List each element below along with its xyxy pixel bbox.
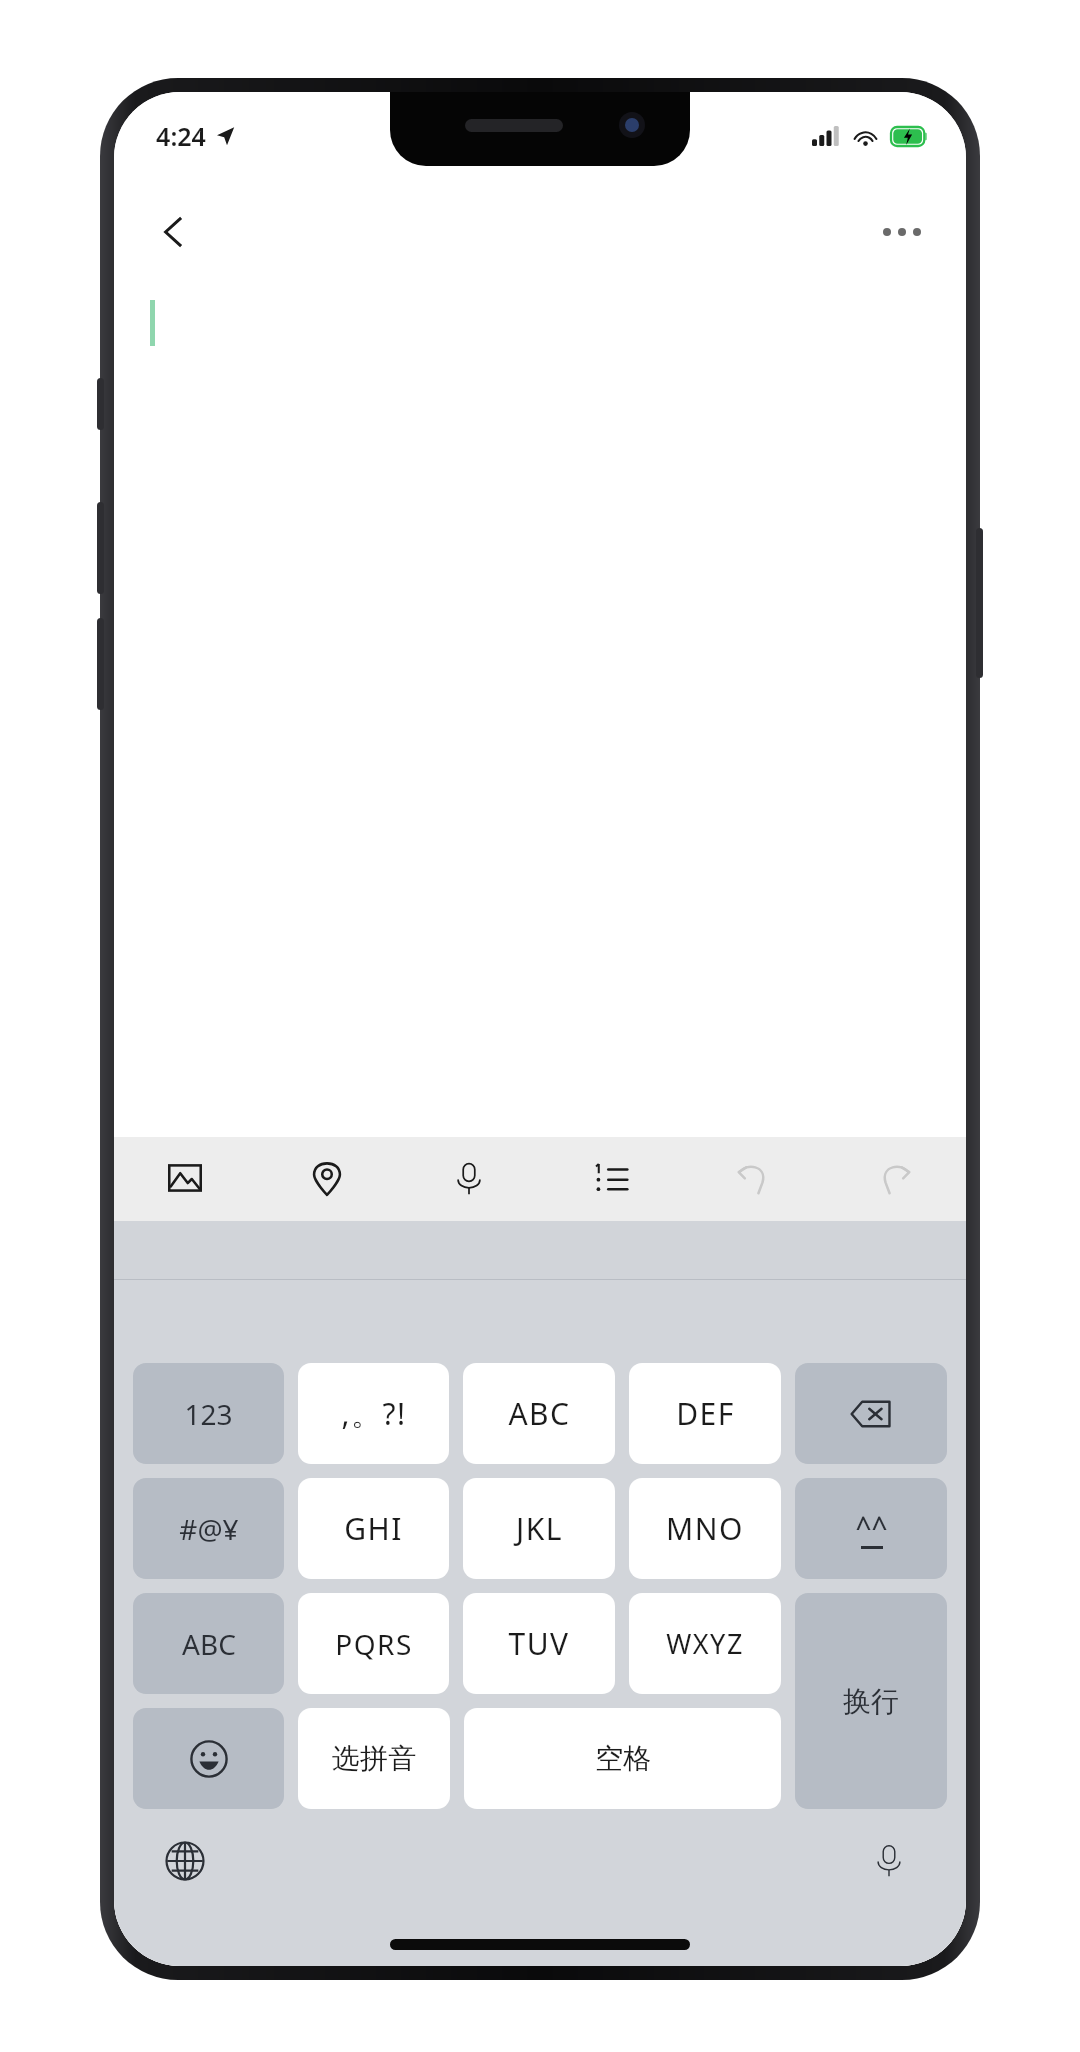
staticText: 选拼音 bbox=[332, 1741, 416, 1776]
staticText: DEF bbox=[676, 1393, 735, 1434]
button[interactable]: ABC bbox=[133, 1593, 284, 1694]
button[interactable]: MNO bbox=[629, 1478, 781, 1579]
button[interactable]: Voice input bbox=[858, 1830, 920, 1892]
staticText: 换行 bbox=[843, 1684, 899, 1719]
staticText: MNO bbox=[666, 1508, 744, 1549]
button[interactable]: ,。?! bbox=[298, 1363, 449, 1464]
button[interactable]: Kaomoji bbox=[795, 1478, 947, 1579]
button[interactable]: Emoji bbox=[133, 1708, 284, 1809]
button[interactable]: Checklist bbox=[540, 1137, 682, 1221]
staticText: ABC bbox=[182, 1625, 236, 1663]
staticText: 123 bbox=[184, 1395, 233, 1433]
button[interactable]: DEF bbox=[629, 1363, 781, 1464]
staticText: GHI bbox=[344, 1508, 403, 1549]
button[interactable]: 123 bbox=[133, 1363, 284, 1464]
button[interactable]: Switch language bbox=[154, 1830, 216, 1892]
button[interactable]: GHI bbox=[298, 1478, 449, 1579]
button[interactable]: Redo bbox=[824, 1137, 966, 1221]
button[interactable]: Voice input bbox=[398, 1137, 540, 1221]
button[interactable]: Back bbox=[138, 196, 210, 268]
button[interactable]: 选拼音 bbox=[298, 1708, 450, 1809]
button[interactable]: JKL bbox=[463, 1478, 615, 1579]
staticText: 空格 bbox=[595, 1741, 651, 1776]
staticText: PQRS bbox=[335, 1625, 413, 1663]
staticText: TUV bbox=[508, 1623, 570, 1664]
staticText: ABC bbox=[508, 1393, 571, 1434]
staticText: WXYZ bbox=[666, 1625, 744, 1662]
staticText: ^^ bbox=[855, 1508, 888, 1546]
button[interactable]: Delete bbox=[795, 1363, 947, 1464]
button[interactable]: #@¥ bbox=[133, 1478, 284, 1579]
button[interactable]: Insert image bbox=[114, 1137, 256, 1221]
button[interactable]: Undo bbox=[682, 1137, 824, 1221]
button[interactable]: WXYZ bbox=[629, 1593, 781, 1694]
staticText: ,。?! bbox=[341, 1393, 407, 1434]
button[interactable]: More options bbox=[866, 196, 938, 268]
button[interactable]: ABC bbox=[463, 1363, 615, 1464]
button[interactable]: 换行 bbox=[795, 1593, 947, 1809]
staticText: 4:24 bbox=[156, 119, 206, 153]
button[interactable]: PQRS bbox=[298, 1593, 449, 1694]
staticText: JKL bbox=[516, 1508, 563, 1549]
button[interactable]: 空格 bbox=[464, 1708, 781, 1809]
button[interactable]: TUV bbox=[463, 1593, 615, 1694]
staticText: #@¥ bbox=[179, 1510, 239, 1548]
button[interactable]: Add location bbox=[256, 1137, 398, 1221]
